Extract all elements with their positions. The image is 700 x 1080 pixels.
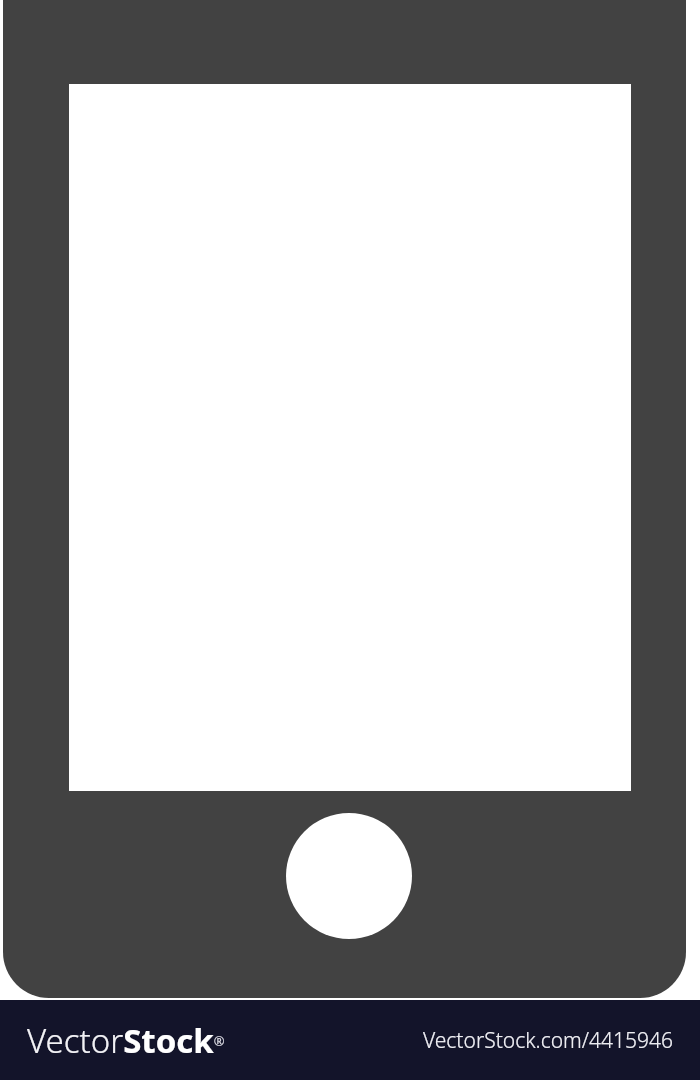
button[interactable]: Tablet device illustration	[3, 0, 686, 998]
staticText: VectorStock.com/4415946	[423, 1026, 674, 1055]
staticText: VectorStock®	[27, 1018, 225, 1063]
button[interactable]: Home button	[286, 813, 412, 939]
